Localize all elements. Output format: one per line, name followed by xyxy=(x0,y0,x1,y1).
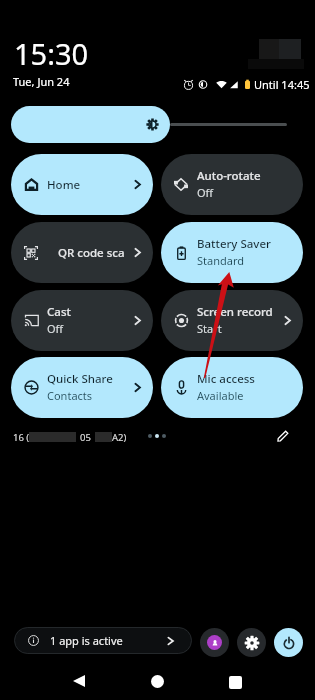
staticText: Mic access xyxy=(197,371,255,387)
staticText: Auto-rotate xyxy=(197,168,261,184)
button[interactable]: Power xyxy=(274,628,303,657)
staticText: Off xyxy=(47,321,64,336)
button[interactable]: Quick Share xyxy=(11,357,153,418)
button[interactable]: Battery Saver xyxy=(161,222,303,283)
button[interactable]: Auto-rotate xyxy=(161,154,303,215)
button[interactable]: Screen record xyxy=(161,290,303,351)
staticText: 16 ( xyxy=(13,431,30,444)
staticText: QR code sca xyxy=(58,245,125,261)
button[interactable]: Home xyxy=(11,154,153,215)
staticText: Battery Saver xyxy=(197,236,271,252)
button[interactable]: Mic access xyxy=(161,357,303,418)
button[interactable]: Edit tiles xyxy=(272,425,294,447)
staticText: Cast xyxy=(47,304,71,320)
button[interactable]: QR code sca xyxy=(11,222,153,283)
staticText: Screen record xyxy=(197,304,273,320)
button[interactable]: 1 app is active xyxy=(14,627,192,654)
staticText: Tue, Jun 24 xyxy=(13,74,70,89)
staticText: Quick Share xyxy=(47,371,113,387)
staticText: Off xyxy=(197,185,214,200)
button[interactable]: Back xyxy=(73,675,85,687)
staticText: Home xyxy=(47,177,81,193)
staticText: Standard xyxy=(197,253,245,268)
staticText: 15:30 xyxy=(14,34,89,73)
staticText: Contacts xyxy=(47,388,93,403)
staticText: Start xyxy=(197,321,222,336)
staticText: A2) xyxy=(112,431,127,444)
staticText: 1 app is active xyxy=(50,633,123,648)
button[interactable]: Home xyxy=(151,675,164,688)
staticText: 05 xyxy=(80,431,91,444)
button[interactable]: Brightness xyxy=(11,106,170,143)
staticText: Until 14:45 xyxy=(254,77,310,92)
button[interactable]: Settings xyxy=(237,628,266,657)
staticText: Available xyxy=(197,388,244,403)
button[interactable]: User account xyxy=(200,628,229,657)
button[interactable]: Recent apps xyxy=(229,676,242,689)
button[interactable]: Cast xyxy=(11,290,153,351)
